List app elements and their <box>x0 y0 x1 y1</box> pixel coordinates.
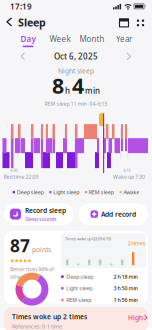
staticText: Times woke up 2 times <box>12 312 87 321</box>
button[interactable]: Record sleep <box>4 203 73 225</box>
button[interactable] <box>129 18 145 27</box>
staticText: 4 <box>72 71 84 99</box>
button[interactable] <box>127 53 131 60</box>
staticText: points <box>32 245 51 254</box>
staticText: Night sleep <box>58 66 94 75</box>
staticText: Wake up 7:30 <box>113 173 145 180</box>
staticText: other users. <box>10 273 39 280</box>
staticText: Deep sleep <box>66 273 93 280</box>
staticText: Awake <box>123 189 139 196</box>
staticText: REM sleep <box>89 189 114 196</box>
staticText: 3 h 50 min <box>113 285 137 292</box>
staticText: Day <box>20 33 35 44</box>
staticText: 17:19 <box>10 1 32 12</box>
staticText: 1 h 56 min <box>113 296 137 303</box>
staticText: Oct 6, 2025 <box>54 51 98 62</box>
staticText: Bed time 22:09 <box>3 173 38 180</box>
button[interactable]: Sleep <box>0 15 46 29</box>
staticText: Record sleep <box>25 206 66 215</box>
staticText: Week <box>49 33 70 44</box>
staticText: Add record <box>101 210 136 219</box>
staticText: Month <box>79 33 104 44</box>
button[interactable]: Week <box>44 33 76 47</box>
staticText: h <box>65 85 70 96</box>
button[interactable]: Times woke up 2 times <box>4 307 148 330</box>
staticText: Year <box>116 33 132 44</box>
staticText: Sleep sounds <box>25 215 57 222</box>
button[interactable]: Year <box>108 33 140 47</box>
button[interactable] <box>119 17 129 27</box>
button[interactable]: Day <box>12 33 44 47</box>
staticText: 87 <box>10 234 30 257</box>
staticText: Times woke up (22:09-6:15) <box>65 236 111 241</box>
staticText: Deep sleep <box>17 189 44 196</box>
staticText: 2 h 18 min <box>113 273 137 280</box>
staticText: 2 times <box>128 240 146 247</box>
staticText: Sleep <box>18 15 46 29</box>
staticText: Light sleep <box>66 285 92 292</box>
staticText: 8 <box>52 71 64 99</box>
staticText: 6:30 <box>10 167 17 173</box>
button[interactable]: Month <box>76 33 108 47</box>
staticText: Better than 98% of <box>10 266 54 273</box>
button[interactable] <box>21 53 25 60</box>
staticText: Light sleep <box>53 189 79 196</box>
staticText: min <box>85 85 100 96</box>
staticText: 6:15 <box>123 167 130 173</box>
button[interactable]: Add record <box>78 203 148 225</box>
staticText: References: 0-1 time <box>12 323 62 330</box>
staticText: REM sleep <box>66 296 91 303</box>
staticText: REM sleep 11 min · 04-6:15 <box>44 100 107 107</box>
staticText: High <box>128 313 143 322</box>
